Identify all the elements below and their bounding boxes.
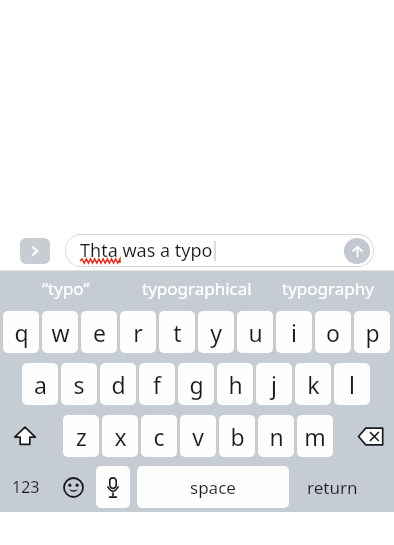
button[interactable]: g [178,363,214,405]
button[interactable]: typographical [131,271,262,306]
staticText: typographical [142,277,252,300]
staticText: o [326,317,340,348]
staticText: q [14,317,29,348]
button[interactable]: k [295,363,331,405]
staticText: f [153,369,161,400]
button[interactable]: Dictate [96,466,130,508]
button[interactable]: Shift [6,415,44,457]
staticText: j [271,369,277,400]
button[interactable]: j [256,363,292,405]
button[interactable]: space [137,466,289,508]
button[interactable]: e [81,311,117,353]
staticText: i [291,317,297,348]
staticText: t [173,317,182,348]
staticText: return [307,476,358,499]
button[interactable]: 123 [5,466,47,508]
staticText: “typo” [42,277,90,300]
staticText: n [269,421,284,452]
staticText: w [51,317,70,348]
staticText: g [189,369,204,400]
staticText: space [190,476,236,499]
staticText: p [365,317,380,348]
button[interactable]: z [63,415,99,457]
staticText: x [114,421,127,452]
button[interactable]: t [159,311,195,353]
staticText: m [304,421,326,452]
button[interactable]: p [354,311,390,353]
staticText: k [307,369,320,400]
button[interactable]: return [301,466,363,508]
button[interactable]: x [102,415,138,457]
button[interactable]: n [258,415,294,457]
staticText: Thta was a typo [80,238,213,263]
button[interactable]: Expand [20,238,50,264]
button[interactable]: v [180,415,216,457]
staticText: z [76,421,87,452]
staticText: l [349,369,355,400]
button[interactable]: Emoji [56,467,90,507]
button[interactable]: w [42,311,78,353]
button[interactable]: d [100,363,136,405]
button[interactable]: m [297,415,333,457]
staticText: e [93,317,106,348]
button[interactable]: “typo” [0,271,131,306]
button[interactable]: Delete [352,415,390,457]
button[interactable]: h [217,363,253,405]
button[interactable]: typography [262,271,394,306]
button[interactable]: q [3,311,39,353]
staticText: h [228,369,243,400]
button[interactable]: f [139,363,175,405]
button[interactable]: i [276,311,312,353]
staticText: c [153,421,165,452]
button[interactable]: r [120,311,156,353]
staticText: a [34,369,47,400]
button[interactable]: y [198,311,234,353]
staticText: s [73,369,85,400]
staticText: d [111,369,126,400]
button[interactable]: s [61,363,97,405]
staticText: b [230,421,245,452]
staticText: u [248,317,263,348]
button[interactable]: a [22,363,58,405]
staticText: typography [282,277,374,300]
button[interactable]: b [219,415,255,457]
button[interactable]: Send [344,238,370,264]
button[interactable]: l [334,363,370,405]
staticText: v [192,421,204,452]
button[interactable]: u [237,311,273,353]
staticText: y [210,317,222,348]
button[interactable]: c [141,415,177,457]
staticText: r [133,317,143,348]
button[interactable]: Thta was a typo [65,234,374,267]
button[interactable]: o [315,311,351,353]
staticText: 123 [12,476,40,498]
